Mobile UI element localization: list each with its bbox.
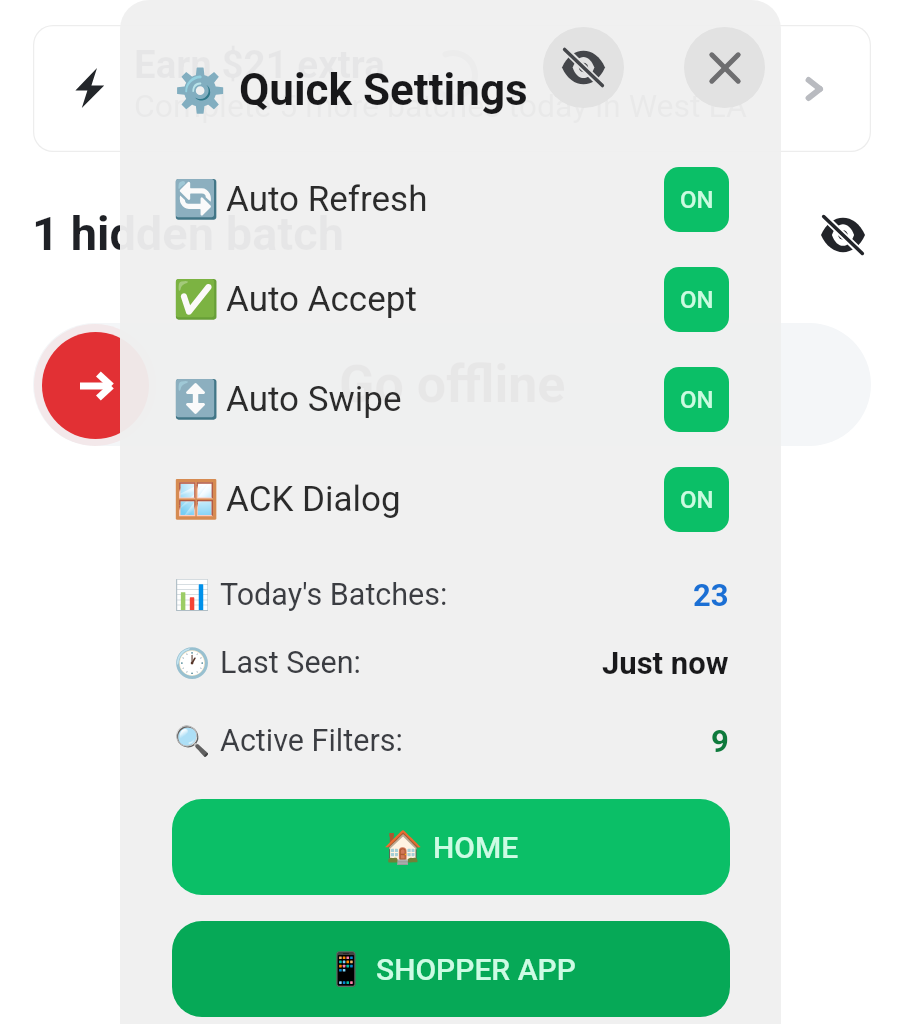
button[interactable]: Go online xyxy=(42,332,149,439)
staticText: ACK Dialog xyxy=(226,479,401,520)
staticText: ⚙️ xyxy=(174,66,227,115)
button[interactable]: 🔍 xyxy=(120,712,781,770)
button[interactable]: Hide xyxy=(543,27,624,108)
staticText: SHOPPER APP xyxy=(376,952,576,987)
staticText: Complete 5 more batches today in West LA xyxy=(134,87,747,125)
staticText: ✅ xyxy=(173,278,220,321)
button[interactable]: 🔄 xyxy=(120,167,781,232)
staticText: Auto Refresh xyxy=(226,179,428,220)
staticText: 📱 xyxy=(326,950,366,988)
staticText: HOME xyxy=(433,830,519,865)
button[interactable]: 🏠 xyxy=(172,799,730,895)
staticText: ↕️ xyxy=(173,378,220,421)
staticText: Quick Settings xyxy=(239,64,528,116)
staticText: Last Seen: xyxy=(220,645,361,681)
button[interactable]: 📊 xyxy=(120,566,781,624)
staticText: Just now xyxy=(602,645,729,681)
staticText: 🕐 xyxy=(174,646,211,680)
staticText: Today's Batches: xyxy=(220,577,448,613)
button[interactable]: Show hidden batches xyxy=(808,200,878,270)
staticText: 🏠 xyxy=(383,828,423,866)
staticText: Go offline xyxy=(339,354,566,415)
staticText: 📊 xyxy=(174,578,211,612)
button[interactable]: 📱 xyxy=(172,921,730,1017)
staticText: 🔍 xyxy=(174,724,211,758)
staticText: Auto Swipe xyxy=(226,379,402,420)
staticText: ON xyxy=(680,186,714,214)
button[interactable]: ✅ xyxy=(120,267,781,332)
staticText: 23 xyxy=(693,577,729,613)
button[interactable]: ↕️ xyxy=(120,367,781,432)
staticText: 🪟 xyxy=(173,478,220,521)
staticText: 1 hidden batch xyxy=(32,206,345,261)
button[interactable]: Go offline xyxy=(33,323,871,446)
button[interactable]: Earn $21 extra xyxy=(33,25,871,152)
staticText: ON xyxy=(680,486,714,514)
staticText: Earn $21 extra xyxy=(134,42,385,87)
staticText: Auto Accept xyxy=(226,279,417,320)
staticText: 🔄 xyxy=(173,178,220,221)
staticText: ON xyxy=(680,286,714,314)
button[interactable]: Close xyxy=(684,27,765,108)
staticText: Active Filters: xyxy=(220,723,403,759)
staticText: 9 xyxy=(711,723,729,759)
staticText: ON xyxy=(680,386,714,414)
button[interactable]: 🪟 xyxy=(120,467,781,532)
button[interactable]: 🕐 xyxy=(120,634,781,692)
